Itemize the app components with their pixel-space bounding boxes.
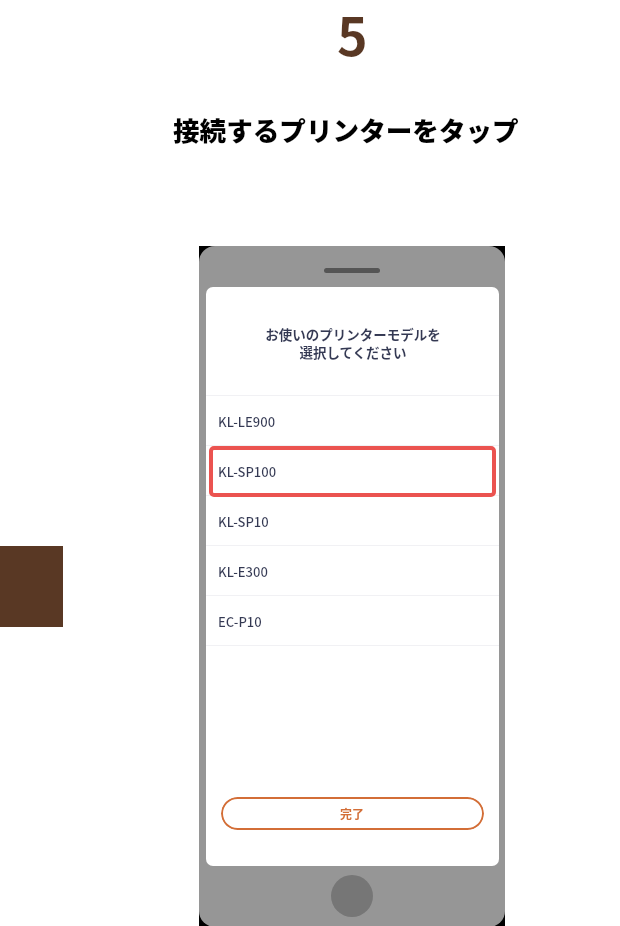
button[interactable]: Home [331,875,373,917]
staticText: 完了 [340,805,365,822]
button[interactable]: EC-P10 [206,596,499,646]
button[interactable]: 完了 [221,797,484,830]
button[interactable]: KL-SP100 [206,446,499,496]
staticText: KL-LE900 [218,412,276,431]
staticText: 5 [337,0,368,71]
button[interactable]: KL-SP10 [206,496,499,546]
staticText: EC-P10 [218,612,262,631]
button[interactable]: KL-LE900 [206,396,499,446]
staticText: 接続するプリンターをタップ [173,110,519,149]
staticText: KL-SP10 [218,512,269,531]
button[interactable]: KL-E300 [206,546,499,596]
staticText: KL-SP100 [218,462,277,481]
staticText: お使いのプリンターモデルを 選択してください [265,324,441,362]
staticText: KL-E300 [218,562,268,581]
